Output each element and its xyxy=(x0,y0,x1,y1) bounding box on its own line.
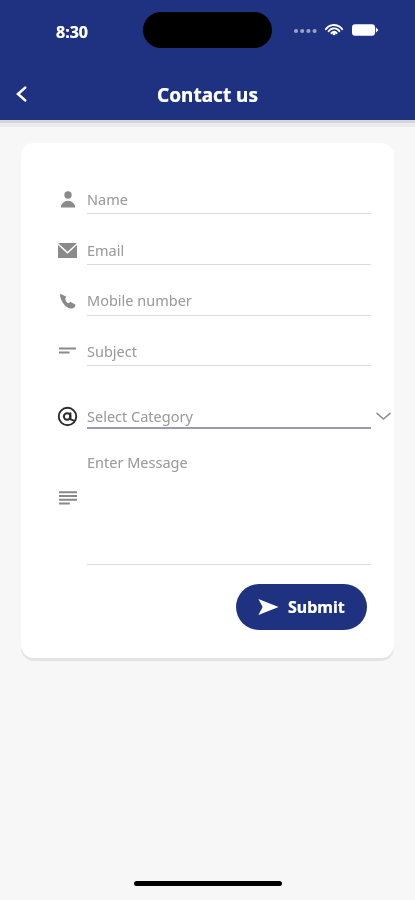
button[interactable]: Select Category xyxy=(48,399,394,433)
staticText: Name xyxy=(87,189,128,209)
other: Open category list xyxy=(372,399,394,433)
staticText: Select Category xyxy=(87,406,193,426)
button[interactable]: Enter Message xyxy=(87,448,371,563)
button[interactable]: Mobile number xyxy=(48,285,394,315)
staticText: Enter Message xyxy=(87,452,188,472)
staticText: Submit xyxy=(288,596,345,618)
button[interactable]: Submit xyxy=(236,584,367,630)
staticText: Contact us xyxy=(157,82,258,108)
button[interactable]: Back xyxy=(2,74,42,114)
button[interactable]: Email xyxy=(48,235,394,265)
button[interactable]: Name xyxy=(48,184,394,214)
button[interactable]: Subject xyxy=(48,336,394,366)
staticText: Subject xyxy=(87,341,137,361)
staticText: Mobile number xyxy=(87,290,192,310)
staticText: 8:30 xyxy=(56,21,88,43)
staticText: Email xyxy=(87,240,125,260)
